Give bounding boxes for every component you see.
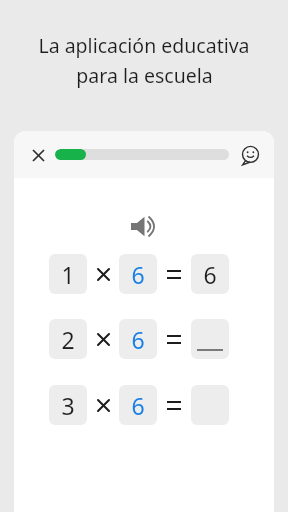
- staticText: 6: [131, 390, 145, 421]
- button[interactable]: 2: [49, 319, 239, 359]
- button[interactable]: Close: [25, 142, 51, 168]
- staticText: 6: [131, 324, 145, 355]
- button[interactable]: Feedback: [237, 142, 263, 168]
- staticText: 2: [61, 324, 75, 355]
- staticText: La aplicación educativa: [38, 32, 250, 59]
- staticText: para la escuela: [76, 62, 213, 89]
- button[interactable]: 3: [49, 385, 239, 425]
- staticText: 1: [61, 259, 75, 290]
- button[interactable]: Play audio: [125, 207, 163, 245]
- button[interactable]: 1: [49, 254, 239, 294]
- staticText: 3: [61, 390, 75, 421]
- staticText: 6: [203, 259, 217, 290]
- staticText: 6: [131, 259, 145, 290]
